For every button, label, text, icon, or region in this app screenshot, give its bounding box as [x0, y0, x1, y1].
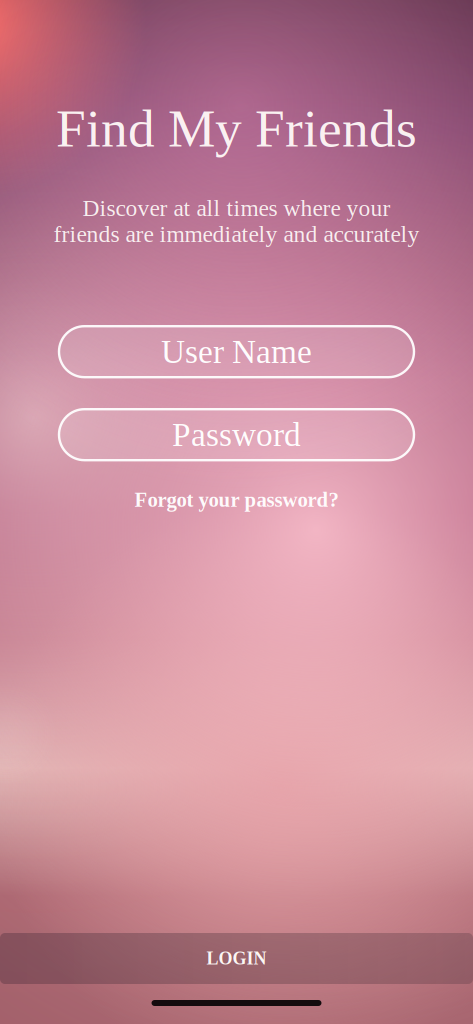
button[interactable]: LOGIN: [0, 933, 473, 984]
button[interactable]: Password: [59, 409, 414, 460]
staticText: Discover at all times where your: [82, 195, 390, 221]
staticText: friends are immediately and accurately: [53, 221, 419, 247]
staticText: Forgot your password?: [134, 488, 338, 511]
staticText: User Name: [161, 333, 312, 370]
button[interactable]: User Name: [59, 326, 414, 377]
staticText: Find My Friends: [56, 99, 417, 158]
button[interactable]: Forgot your password?: [122, 483, 350, 516]
staticText: LOGIN: [206, 948, 266, 968]
staticText: Password: [172, 416, 301, 453]
